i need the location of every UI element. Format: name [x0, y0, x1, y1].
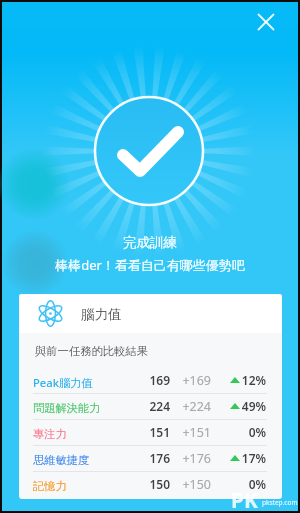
staticText: 150 — [19, 476, 170, 492]
staticText: 169 — [19, 372, 170, 388]
staticText: 記憶力 — [33, 479, 67, 493]
staticText: +151 — [19, 424, 211, 441]
button[interactable]: 問題解決能力 — [19, 393, 282, 419]
staticText: 腦力值 — [81, 306, 122, 323]
staticText: +150 — [19, 476, 211, 493]
staticText: +224 — [19, 398, 211, 415]
staticText: 0% — [19, 476, 266, 492]
button[interactable]: 專注力 — [19, 419, 282, 445]
staticText: 思維敏捷度 — [33, 453, 89, 467]
staticText: 與前一任務的比較結果 — [35, 344, 148, 358]
staticText: 0% — [19, 424, 266, 440]
staticText: 17% — [19, 450, 266, 466]
staticText: Peak腦力值 — [33, 375, 93, 390]
staticText: 專注力 — [33, 427, 67, 441]
staticText: pkstep.com — [262, 498, 298, 507]
staticText: 151 — [19, 424, 170, 440]
staticText: 12% — [19, 372, 266, 388]
staticText: PK — [231, 486, 258, 513]
button[interactable]: 思維敏捷度 — [19, 445, 282, 471]
staticText: 224 — [19, 398, 170, 414]
button[interactable]: 腦力值 — [19, 294, 282, 333]
staticText: 176 — [19, 450, 170, 466]
button[interactable]: Close — [255, 11, 285, 41]
staticText: 問題解決能力 — [33, 401, 101, 415]
staticText: 49% — [19, 398, 266, 414]
button[interactable]: 記憶力 — [19, 471, 282, 497]
staticText: +176 — [19, 450, 211, 467]
staticText: 棒棒der！看看自己有哪些優勢吧 — [2, 256, 298, 274]
button[interactable]: Peak腦力值 — [19, 367, 282, 393]
staticText: +169 — [19, 372, 211, 389]
staticText: 完成訓練 — [2, 234, 298, 251]
